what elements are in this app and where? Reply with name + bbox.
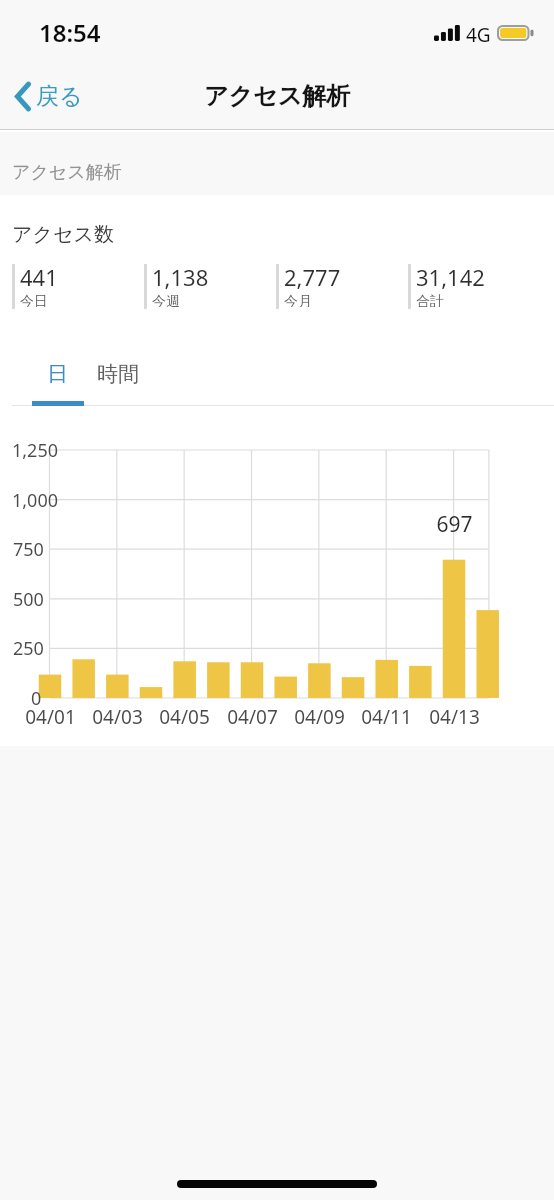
staticText: 戻る xyxy=(36,82,83,111)
staticText: 500 xyxy=(13,587,44,612)
staticText: アクセス数 xyxy=(12,222,114,247)
staticText: 441 xyxy=(20,262,58,292)
staticText: アクセス解析 xyxy=(204,81,351,111)
staticText: 4G xyxy=(466,22,491,48)
staticText: 1,000 xyxy=(12,488,59,513)
staticText: 04/07 xyxy=(227,704,278,730)
staticText: 04/03 xyxy=(92,704,143,730)
staticText: 日 xyxy=(47,361,68,387)
staticText: 04/11 xyxy=(361,704,412,730)
staticText: 31,142 xyxy=(416,262,485,292)
staticText: 750 xyxy=(13,537,44,562)
staticText: 697 xyxy=(436,510,473,539)
staticText: 04/05 xyxy=(159,704,210,730)
staticText: 1,138 xyxy=(152,262,209,292)
staticText: 今日 xyxy=(20,293,48,307)
staticText: 0 xyxy=(31,686,42,711)
staticText: 04/13 xyxy=(429,704,480,730)
staticText: 時間 xyxy=(97,361,139,387)
staticText: 2,777 xyxy=(284,262,341,292)
staticText: 04/01 xyxy=(25,704,76,730)
staticText: 1,250 xyxy=(12,438,59,463)
staticText: 18:54 xyxy=(39,16,101,49)
button[interactable]: 戻る xyxy=(0,72,99,121)
staticText: アクセス解析 xyxy=(12,161,122,184)
button[interactable]: 時間 xyxy=(85,353,151,395)
staticText: 合計 xyxy=(416,293,444,307)
staticText: 04/09 xyxy=(294,704,345,730)
staticText: 250 xyxy=(13,636,44,661)
staticText: 今月 xyxy=(284,293,312,307)
button[interactable]: 日 xyxy=(35,353,80,395)
staticText: 今週 xyxy=(152,293,180,307)
